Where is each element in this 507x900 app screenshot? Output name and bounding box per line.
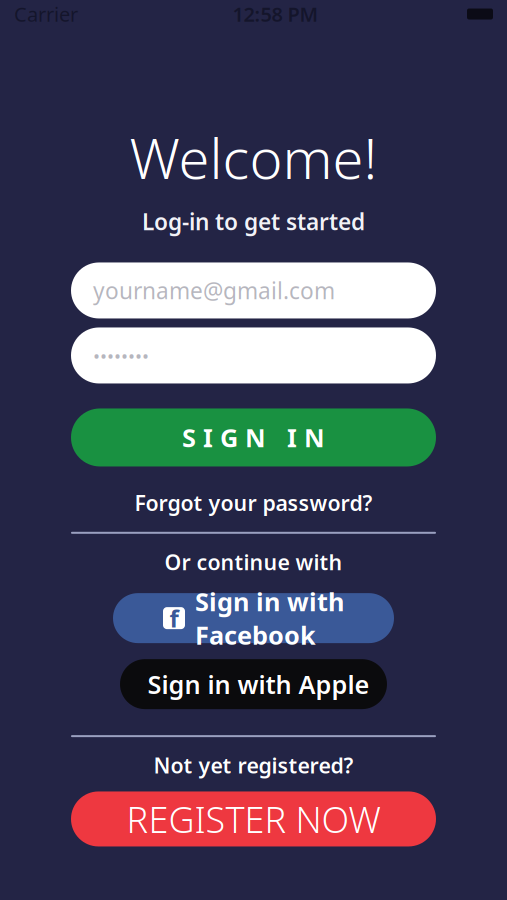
staticText: Sign in with Facebook	[195, 584, 344, 652]
staticText: REGISTER NOW	[126, 795, 380, 843]
button[interactable]: S I G N I N	[71, 408, 436, 466]
button[interactable]	[120, 659, 387, 709]
button[interactable]: yourname@gmail.com	[71, 262, 436, 318]
staticText: S I G N I N	[182, 421, 325, 454]
button[interactable]: REGISTER NOW	[71, 791, 436, 846]
staticText: Or continue with	[164, 548, 342, 576]
staticText: Sign in with Apple	[147, 667, 369, 701]
staticText: Welcome!	[129, 120, 377, 194]
staticText: yourname@gmail.com	[93, 275, 335, 305]
staticText: Not yet registered?	[153, 751, 353, 779]
staticText: Log-in to get started	[142, 206, 365, 236]
button[interactable]: ••••••••	[71, 327, 436, 383]
staticText: ••••••••	[93, 343, 149, 368]
button[interactable]: f	[113, 593, 394, 643]
staticText: Forgot your password?	[134, 488, 372, 517]
button[interactable]: Forgot your password?	[134, 488, 372, 517]
staticText: 12:58 PM	[232, 1, 318, 27]
staticText: Carrier	[14, 1, 78, 27]
staticText: f	[169, 602, 178, 634]
